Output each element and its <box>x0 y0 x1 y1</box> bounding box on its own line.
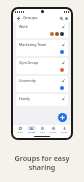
button[interactable]: Profile <box>59 125 70 135</box>
staticText: Profile <box>61 131 68 134</box>
button[interactable]: Groups <box>26 125 37 135</box>
button[interactable]: Gym Group <box>16 58 68 74</box>
staticText: Marketing Team <box>19 42 47 47</box>
button[interactable]: Search <box>59 16 64 21</box>
button[interactable]: Work <box>16 22 68 38</box>
staticText: Groups <box>23 15 38 21</box>
staticText: Gym Group <box>19 60 39 65</box>
staticText: Groups <box>28 131 36 134</box>
button[interactable]: Family <box>16 94 68 106</box>
button[interactable]: Account <box>65 17 68 20</box>
button[interactable]: Back <box>16 16 21 21</box>
button[interactable]: Calls <box>37 125 48 135</box>
staticText: Work <box>19 24 28 29</box>
button[interactable]: Marketing Team <box>16 40 68 56</box>
button[interactable]: Create group <box>58 113 67 122</box>
staticText: Status <box>50 131 57 134</box>
button[interactable]: Status <box>48 125 59 135</box>
staticText: Family <box>19 96 30 101</box>
staticText: Groups for easy sharing <box>14 153 70 172</box>
button[interactable]: University <box>16 76 68 92</box>
staticText: Calls <box>40 131 45 134</box>
button[interactable]: Chats <box>14 125 26 135</box>
staticText: Chats <box>17 131 23 134</box>
staticText: University <box>19 78 36 83</box>
